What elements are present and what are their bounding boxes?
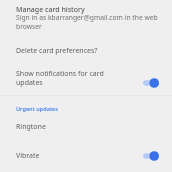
staticText: Delete card preferences? (16, 46, 98, 56)
staticText: Sign in as kbarranger@gmail.com in the w… (16, 13, 158, 31)
staticText: Vibrate (16, 151, 104, 161)
button[interactable]: Delete card preferences? (0, 45, 172, 57)
button[interactable]: Ringtone (0, 121, 172, 133)
button[interactable]: Vibrate toggle (138, 147, 164, 165)
staticText: Show notifications for card updates (16, 69, 104, 87)
button[interactable]: Vibrate (0, 147, 172, 165)
button[interactable]: Manage card history (0, 3, 172, 35)
staticText: Urgent updates (16, 105, 59, 112)
staticText: Manage card history (16, 5, 85, 15)
button[interactable]: Show notifications for card updates togg… (138, 74, 164, 92)
staticText: Ringtone (16, 122, 46, 132)
button[interactable]: Show notifications for card updates (0, 69, 172, 87)
